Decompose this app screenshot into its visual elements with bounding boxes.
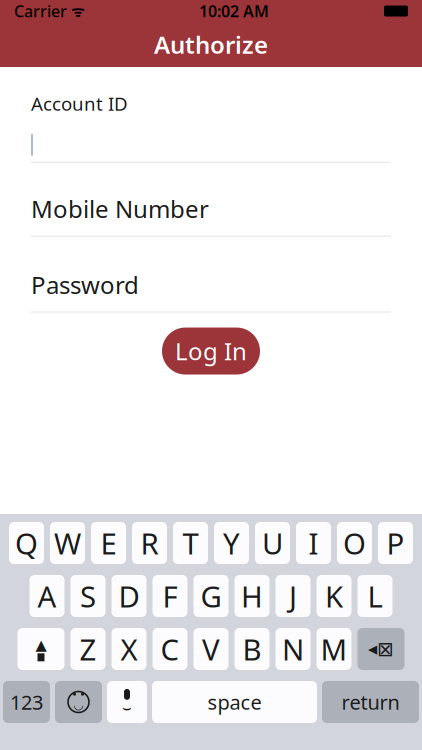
staticText: P [386, 523, 404, 562]
staticText: K [325, 576, 343, 615]
staticText: ⌣ [122, 701, 132, 715]
staticText: H [241, 576, 263, 615]
button[interactable]: Dictation [107, 681, 147, 723]
staticText: ◡ [74, 698, 83, 711]
button[interactable]: E [91, 522, 126, 564]
staticText: M [320, 629, 347, 668]
button[interactable]: J [275, 575, 310, 617]
staticText: ◀ [368, 642, 377, 656]
staticText: 10:02 AM [199, 0, 269, 22]
staticText: O [343, 523, 366, 562]
button[interactable]: C [152, 628, 187, 670]
button[interactable]: Shift [17, 628, 64, 670]
staticText: R [140, 523, 158, 562]
staticText: Account ID [31, 91, 128, 116]
staticText: L [367, 576, 382, 615]
button[interactable]: X [111, 628, 146, 670]
staticText: Log In [175, 335, 247, 367]
button[interactable]: B [234, 628, 269, 670]
button[interactable]: G [193, 575, 228, 617]
button[interactable]: Emoji [55, 681, 102, 723]
button[interactable]: space [152, 681, 317, 723]
button[interactable]: O [337, 522, 372, 564]
button[interactable]: I [296, 522, 331, 564]
button[interactable]: V [193, 628, 228, 670]
button[interactable]: L [357, 575, 392, 617]
staticText: return [341, 689, 399, 715]
button[interactable]: Log In [162, 327, 260, 374]
button[interactable]: Z [70, 628, 105, 670]
staticText: ⊠ [377, 638, 394, 660]
button[interactable]: S [70, 575, 105, 617]
staticText: F [162, 576, 177, 615]
staticText: A [37, 576, 56, 615]
staticText: ᯤ [67, 1, 84, 21]
staticText: G [200, 576, 221, 615]
staticText: S [80, 576, 96, 615]
staticText: 123 [10, 689, 43, 715]
staticText: B [242, 629, 261, 668]
button[interactable]: F [152, 575, 187, 617]
button[interactable]: Delete [357, 628, 404, 670]
button[interactable]: M [316, 628, 351, 670]
staticText: X [120, 629, 137, 668]
staticText: V [202, 629, 220, 668]
button[interactable]: 123 [3, 681, 50, 723]
staticText: T [182, 523, 198, 562]
staticText: W [54, 523, 81, 562]
button[interactable]: return [322, 681, 419, 723]
staticText: N [282, 629, 304, 668]
staticText: C [160, 629, 179, 668]
button[interactable]: U [255, 522, 290, 564]
staticText: Mobile Number [31, 193, 209, 225]
button[interactable]: W [50, 522, 85, 564]
staticText: Carrier [14, 0, 67, 22]
button[interactable]: H [234, 575, 269, 617]
staticText: ▲ [35, 637, 46, 653]
staticText: Y [223, 523, 240, 562]
button[interactable]: Y [214, 522, 249, 564]
button[interactable]: T [173, 522, 208, 564]
button[interactable]: R [132, 522, 167, 564]
staticText: Authorize [154, 29, 268, 60]
staticText: I [308, 523, 318, 562]
staticText: Z [79, 629, 96, 668]
button[interactable]: A [29, 575, 64, 617]
staticText: U [262, 523, 283, 562]
button[interactable]: N [275, 628, 310, 670]
staticText: Password [31, 269, 139, 301]
staticText: Q [15, 523, 38, 562]
button[interactable]: P [378, 522, 413, 564]
button[interactable]: Q [9, 522, 44, 564]
staticText: J [289, 576, 297, 615]
button[interactable]: K [316, 575, 351, 617]
button[interactable]: D [111, 575, 146, 617]
staticText: E [100, 523, 116, 562]
staticText: space [207, 689, 261, 715]
staticText: D [118, 576, 139, 615]
